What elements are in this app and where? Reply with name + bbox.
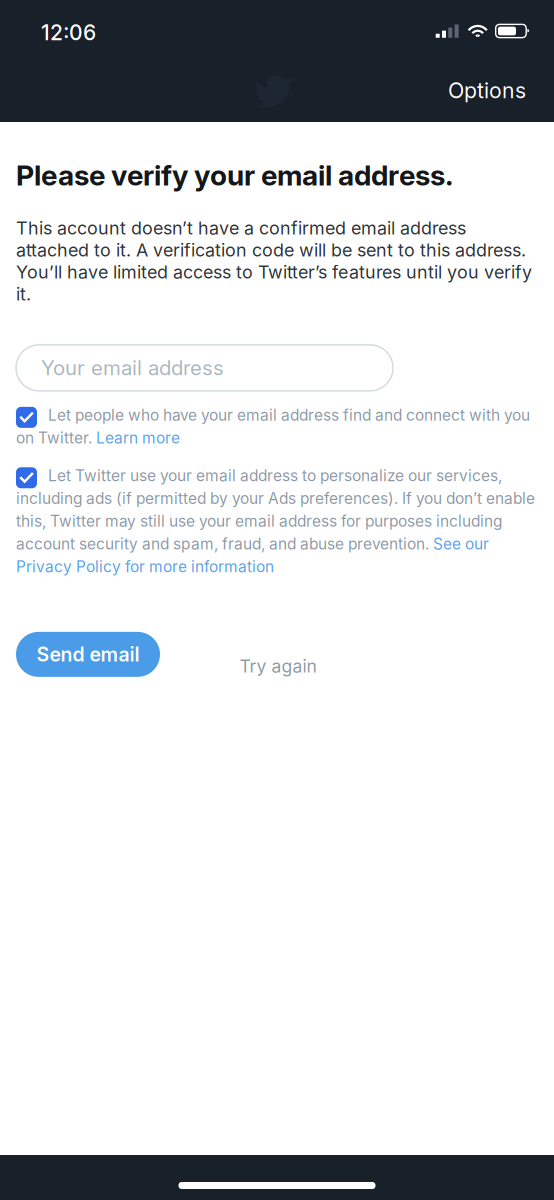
button[interactable]: Let people who have your email address f…	[16, 406, 538, 447]
button[interactable]: Options	[434, 68, 540, 112]
staticText: Please verify your email address.	[16, 158, 453, 192]
staticText: This account doesn’t have a confirmed em…	[16, 217, 532, 305]
staticText: Your email address	[41, 355, 224, 380]
staticText: Options	[448, 78, 526, 103]
staticText: 12:06	[41, 20, 96, 45]
staticText: Try again	[239, 656, 316, 677]
staticText: Send email	[36, 643, 139, 666]
button[interactable]: Send email	[16, 632, 160, 677]
button[interactable]: Let Twitter use your email address to pe…	[16, 466, 538, 576]
staticText: Let Twitter use your email address to pe…	[16, 466, 535, 576]
staticText: Let people who have your email address f…	[16, 406, 530, 447]
button[interactable]: Try again	[218, 632, 338, 677]
